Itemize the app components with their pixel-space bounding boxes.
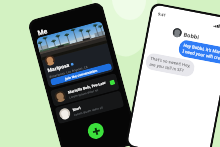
- staticText: Bobbi: [183, 30, 200, 40]
- staticText: That's so sweet! Hey, are you still in S…: [149, 56, 191, 74]
- button[interactable]: New post: [86, 121, 106, 141]
- button[interactable]: Mariella Bob, Pre-Law: [50, 73, 120, 107]
- staticText: 9:41: [157, 11, 166, 18]
- button[interactable]: Bobbi: [172, 27, 200, 41]
- staticText: Hey Bobbi, it's Mari! I need your wifi c…: [182, 43, 220, 61]
- staticText: Mari: [72, 105, 82, 112]
- staticText: Me: [36, 26, 49, 37]
- staticText: Join the conversation: [65, 69, 98, 81]
- staticText: Lorem ipsum dolor sit: [73, 105, 103, 117]
- staticText: Lorem ipsum dolor sit: [69, 88, 99, 100]
- button[interactable]: Mari: [54, 90, 124, 124]
- staticText: @mariposa Los Angeles, CA: [49, 65, 88, 79]
- staticText: Mariposa: [47, 61, 71, 74]
- button[interactable]: Me: [36, 26, 49, 37]
- button[interactable]: Mariposa: [36, 21, 115, 88]
- button[interactable]: That's so sweet! Hey, are you still in S…: [144, 52, 196, 78]
- button[interactable]: Hey Bobbi, it's Mari! I need your wifi c…: [177, 39, 220, 65]
- staticText: Mariella Bob, Pre-Law: [67, 80, 106, 95]
- button[interactable]: Join the conversation: [50, 63, 112, 86]
